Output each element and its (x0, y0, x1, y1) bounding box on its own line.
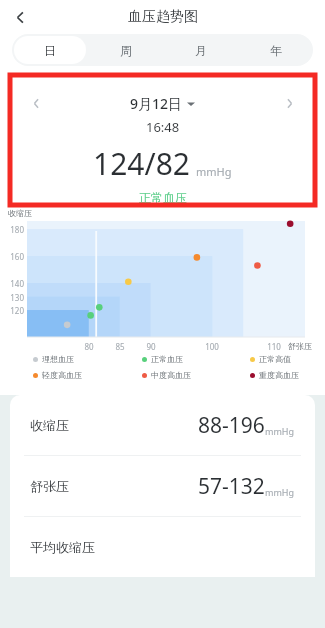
staticText: 正常血压 (151, 354, 183, 364)
staticText: mmHg (265, 486, 295, 498)
staticText: 理想血压 (42, 354, 74, 364)
staticText: 88-196 (198, 411, 265, 440)
staticText: 85 (109, 341, 131, 352)
staticText: 重度高血压 (259, 370, 299, 380)
staticText: 中度高血压 (151, 370, 191, 380)
button[interactable]: Back (4, 1, 36, 33)
staticText: 平均收缩压 (30, 539, 95, 555)
staticText: 140 (1, 278, 24, 289)
button[interactable]: 舒张压 (10, 456, 315, 516)
staticText: 月 (195, 43, 207, 58)
staticText: 收缩压 (30, 417, 69, 433)
staticText: 90 (140, 341, 162, 352)
staticText: 周 (120, 43, 132, 58)
staticText: 180 (1, 224, 24, 235)
staticText: 收缩压 (8, 208, 32, 218)
staticText: 16:48 (146, 118, 180, 136)
staticText: 血压趋势图 (128, 8, 198, 26)
staticText: 100 (201, 341, 223, 352)
staticText: 120 (1, 305, 24, 316)
staticText: 9月12日 (130, 94, 183, 113)
button[interactable]: 周 (90, 36, 161, 64)
staticText: 舒张压 (288, 341, 312, 351)
button[interactable]: 月 (165, 36, 236, 64)
button[interactable]: 收缩压 (10, 395, 315, 455)
staticText: 80 (78, 341, 100, 352)
staticText: 年 (270, 43, 282, 58)
button[interactable]: Previous day (24, 91, 48, 115)
staticText: 57-132 (198, 472, 265, 501)
staticText: 160 (1, 251, 24, 262)
staticText: 124/82 (93, 143, 190, 184)
button[interactable]: Previous day (10, 75, 315, 205)
button[interactable]: 年 (240, 36, 311, 64)
staticText: 轻度高血压 (42, 370, 82, 380)
staticText: mmHg (196, 164, 232, 179)
staticText: 110 (263, 341, 285, 352)
button[interactable]: 日 (14, 36, 86, 64)
button[interactable]: 平均收缩压 (10, 517, 315, 577)
button[interactable]: Next day (277, 91, 301, 115)
staticText: 正常高值 (259, 354, 291, 364)
staticText: 舒张压 (30, 478, 69, 494)
staticText: mmHg (265, 425, 295, 437)
staticText: 日 (44, 43, 56, 58)
staticText: 130 (1, 292, 24, 303)
staticText: 正常血压 (139, 190, 187, 205)
